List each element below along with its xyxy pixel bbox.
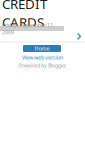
- staticText: Home: [34, 45, 49, 52]
- staticText: Powered by Blogger.: [19, 62, 66, 69]
- button[interactable]: View web version: [0, 55, 85, 60]
- staticText: CREDIT CARDS: [2, 0, 47, 31]
- button[interactable]: Powered by Blogger.: [0, 63, 85, 68]
- button[interactable]: Home: [23, 45, 61, 52]
- button[interactable]: Older Posts: [77, 33, 81, 40]
- staticText: Friday, September 11, 2009: [2, 21, 54, 36]
- staticText: View web version: [22, 54, 63, 61]
